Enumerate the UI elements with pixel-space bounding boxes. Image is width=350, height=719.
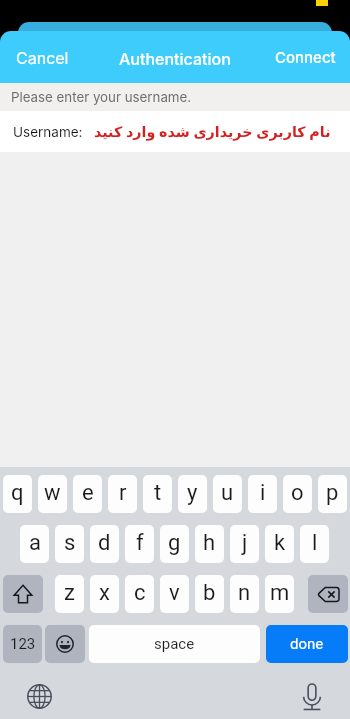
staticText: l	[312, 530, 318, 556]
staticText: y	[187, 480, 198, 506]
button[interactable]: Switch keyboard language	[26, 683, 52, 709]
staticText: Authentication	[119, 49, 231, 68]
staticText: d	[98, 530, 111, 556]
staticText: Connect	[275, 48, 336, 66]
staticText: g	[168, 530, 181, 556]
button[interactable]: s	[55, 525, 84, 563]
button[interactable]: q	[3, 475, 32, 513]
button[interactable]: d	[90, 525, 119, 563]
staticText: نام کاربری خریداری شده وارد کنید	[94, 122, 331, 141]
staticText: s	[64, 530, 76, 556]
staticText: h	[203, 530, 216, 556]
staticText: v	[169, 580, 180, 606]
button[interactable]: done	[266, 625, 348, 663]
staticText: t	[154, 480, 162, 506]
button[interactable]: k	[265, 525, 294, 563]
staticText: m	[270, 580, 290, 606]
button[interactable]: Emoji	[45, 625, 85, 663]
staticText: r	[119, 480, 127, 506]
button[interactable]: h	[195, 525, 224, 563]
staticText: Cancel	[16, 48, 69, 67]
button[interactable]: Backspace	[308, 575, 348, 613]
staticText: c	[134, 580, 146, 606]
button[interactable]: i	[248, 475, 277, 513]
button[interactable]: p	[318, 475, 347, 513]
staticText: f	[136, 530, 144, 556]
staticText: w	[44, 480, 61, 506]
staticText: 123	[10, 635, 36, 653]
button[interactable]: Cancel	[0, 40, 81, 75]
button[interactable]: t	[143, 475, 172, 513]
staticText: Please enter your username.	[11, 89, 192, 105]
button[interactable]: r	[108, 475, 137, 513]
staticText: x	[99, 580, 110, 606]
staticText: n	[238, 580, 251, 606]
button[interactable]: v	[160, 575, 189, 613]
button[interactable]: Shift	[3, 575, 43, 613]
staticText: j	[242, 530, 248, 556]
button[interactable]: l	[300, 525, 329, 563]
button[interactable]: space	[89, 625, 260, 663]
staticText: a	[29, 530, 41, 556]
button[interactable]: u	[213, 475, 242, 513]
button[interactable]: c	[125, 575, 154, 613]
staticText: p	[326, 480, 339, 506]
button[interactable]: g	[160, 525, 189, 563]
button[interactable]: w	[38, 475, 67, 513]
staticText: k	[274, 530, 286, 556]
staticText: o	[291, 480, 304, 506]
button[interactable]: f	[125, 525, 154, 563]
button[interactable]: j	[230, 525, 259, 563]
button[interactable]: o	[283, 475, 312, 513]
staticText: done	[290, 635, 324, 653]
staticText: q	[11, 480, 24, 506]
button[interactable]: 123	[3, 625, 42, 663]
button[interactable]: e	[73, 475, 102, 513]
staticText: b	[203, 580, 216, 606]
button[interactable]: y	[178, 475, 207, 513]
button[interactable]: n	[230, 575, 259, 613]
staticText: i	[260, 480, 266, 506]
staticText: e	[82, 480, 94, 506]
button[interactable]: Connect	[263, 40, 350, 74]
button[interactable]: m	[265, 575, 294, 613]
staticText: u	[221, 480, 234, 506]
staticText: space	[154, 635, 195, 653]
button[interactable]: Dictation	[302, 683, 322, 711]
button[interactable]: z	[55, 575, 84, 613]
button[interactable]: a	[20, 525, 49, 563]
staticText: z	[64, 580, 75, 606]
button[interactable]: x	[90, 575, 119, 613]
button[interactable]: b	[195, 575, 224, 613]
staticText: Username:	[13, 124, 83, 140]
